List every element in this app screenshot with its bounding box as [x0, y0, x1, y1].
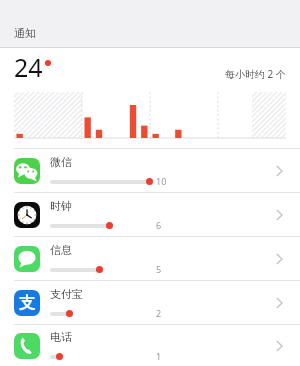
button[interactable]: 信息 [0, 237, 300, 281]
staticText: 10 [156, 175, 167, 187]
button[interactable]: 微信 [0, 149, 300, 193]
other: 打开 电话 详情 [270, 337, 288, 355]
staticText: 信息 [50, 243, 72, 257]
staticText: 2 [156, 307, 162, 319]
staticText: 5 [156, 263, 162, 275]
staticText: 6 [156, 219, 162, 231]
staticText: 通知 [14, 26, 36, 40]
other: 打开 信息 详情 [270, 250, 288, 268]
other: 打开 时钟 详情 [270, 206, 288, 224]
button[interactable]: 支 [0, 281, 300, 325]
other: 打开 微信 详情 [270, 162, 288, 180]
staticText: 微信 [50, 155, 72, 169]
staticText: 每小时约 2 个 [225, 67, 286, 81]
staticText: 电话 [50, 330, 72, 344]
staticText: 时钟 [50, 199, 72, 213]
staticText: 1 [156, 350, 162, 362]
staticText: 支付宝 [50, 287, 83, 301]
staticText: 24 [14, 50, 43, 84]
button[interactable]: 时钟 [0, 193, 300, 237]
button[interactable]: 电话 [0, 325, 300, 366]
other: 打开 支付宝 详情 [270, 294, 288, 312]
staticText: 支 [19, 293, 35, 313]
